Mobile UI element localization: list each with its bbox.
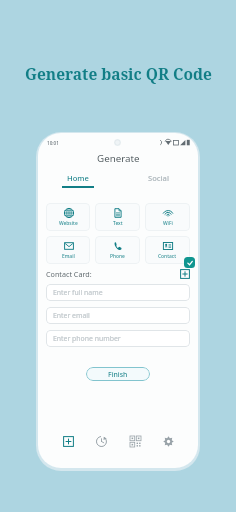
button[interactable]: Home <box>38 173 118 188</box>
staticText: Email <box>62 253 75 260</box>
staticText: Enter email <box>53 311 90 320</box>
button[interactable]: Phone <box>95 236 140 264</box>
staticText: Generate basic QR Code <box>25 63 212 84</box>
staticText: Social <box>148 173 169 183</box>
button[interactable]: Contact <box>145 236 190 264</box>
button[interactable]: Add contact card <box>180 269 190 279</box>
staticText: Text <box>113 220 123 227</box>
staticText: Phone <box>110 253 125 260</box>
staticText: WiFi <box>163 220 173 227</box>
staticText: Finish <box>108 370 128 379</box>
staticText: Contact <box>158 253 177 260</box>
staticText: Enter phone number <box>53 334 121 343</box>
button[interactable]: Text <box>95 203 140 231</box>
staticText: Contact Card: <box>46 269 92 279</box>
button[interactable]: Email <box>46 236 90 264</box>
staticText: Home <box>67 173 89 183</box>
staticText: Generate <box>97 152 140 165</box>
button[interactable]: Create <box>57 430 79 452</box>
button[interactable]: Scan <box>124 430 146 452</box>
button[interactable]: Social <box>118 173 198 188</box>
staticText: 10:01 <box>47 140 59 146</box>
button[interactable]: Finish <box>86 367 150 381</box>
button[interactable]: Website <box>46 203 90 231</box>
button[interactable]: Enter email <box>46 307 190 324</box>
staticText: Enter full name <box>53 288 103 297</box>
button[interactable]: Enter phone number <box>46 330 190 347</box>
button[interactable]: History <box>90 430 112 452</box>
button[interactable]: Enter full name <box>46 284 190 301</box>
button[interactable]: Settings <box>157 430 179 452</box>
button[interactable]: WiFi <box>145 203 190 231</box>
staticText: Website <box>59 220 78 227</box>
other: Selected <box>184 257 195 268</box>
